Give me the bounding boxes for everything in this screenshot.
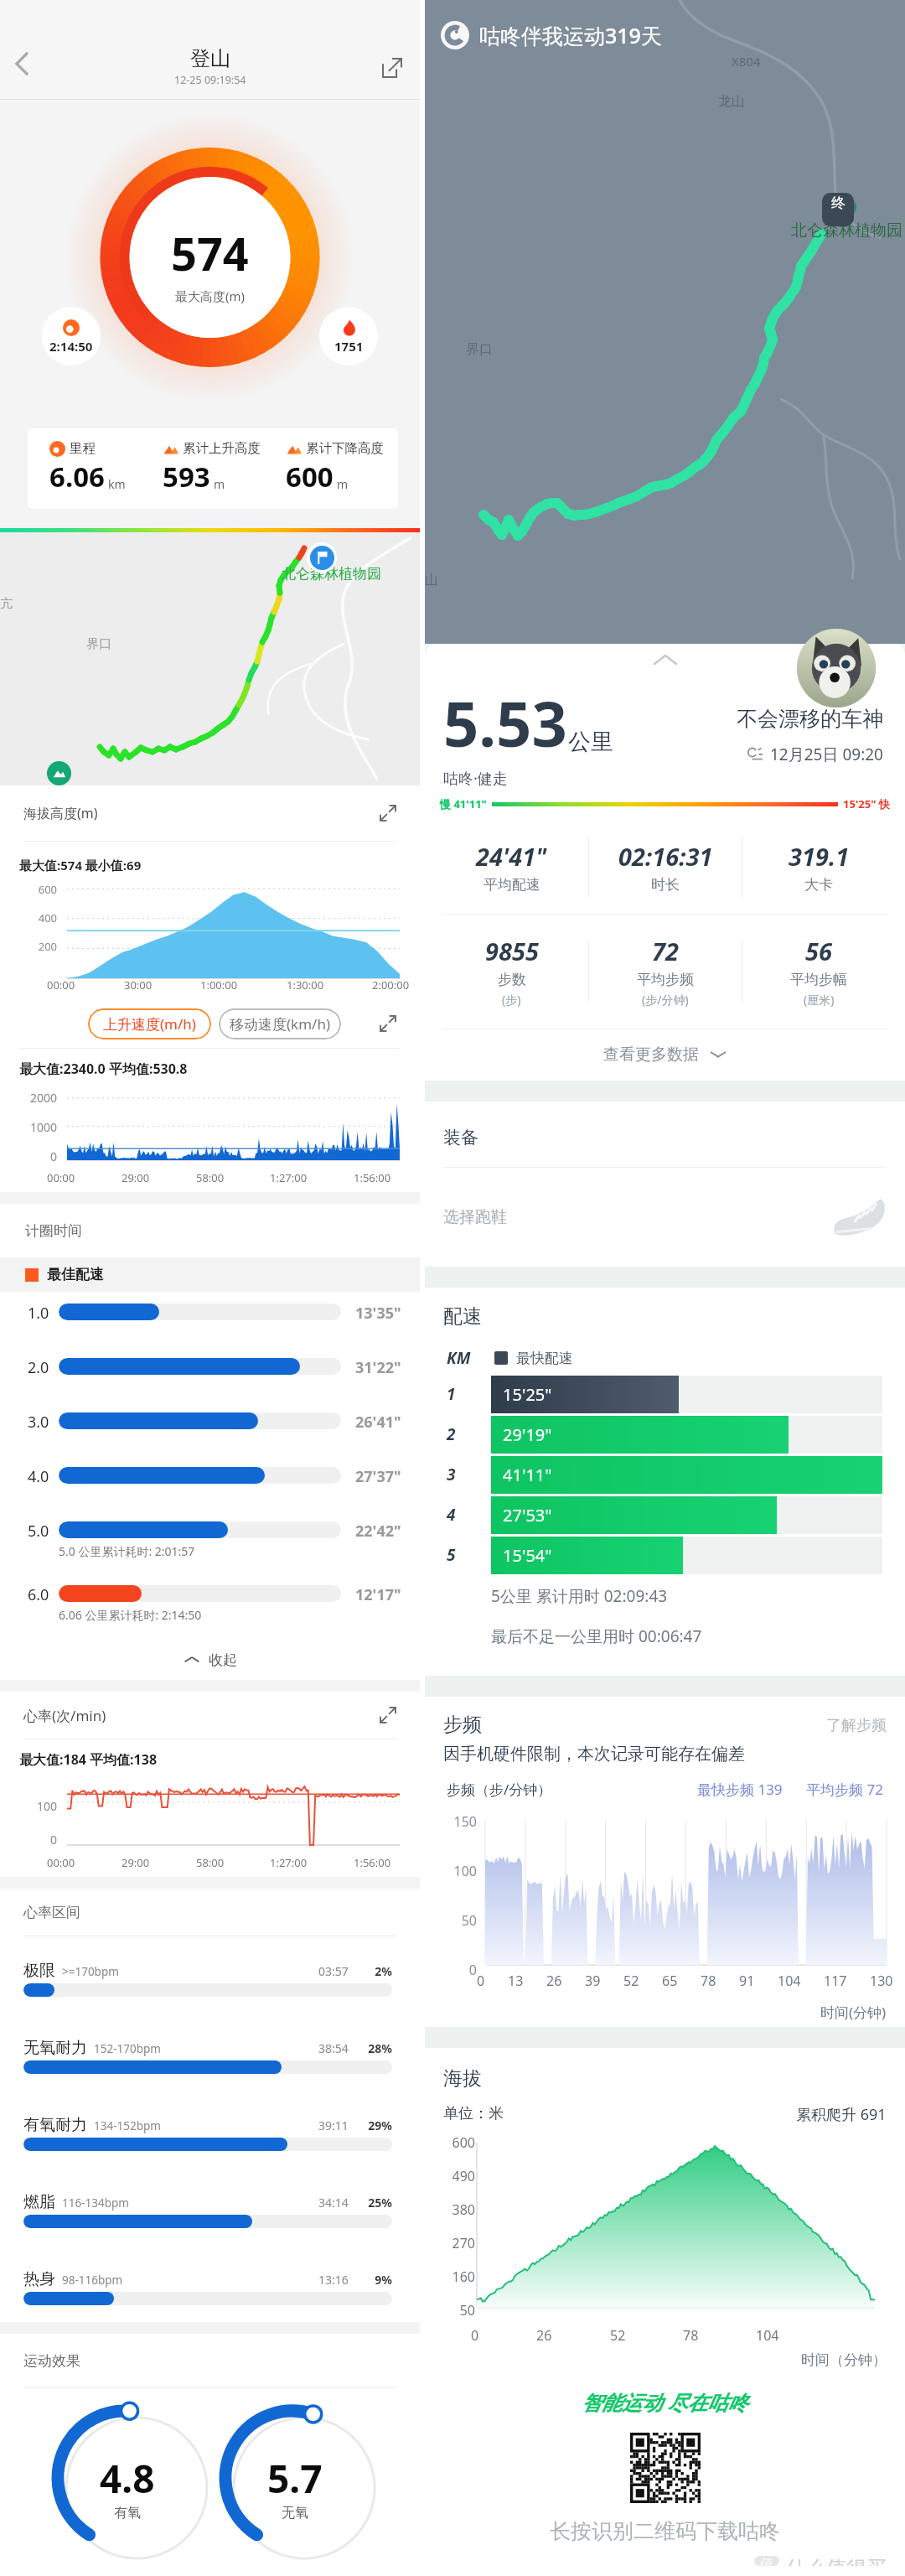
staticText: 5.0 (28, 1521, 59, 1538)
staticText: 9855 (485, 935, 539, 967)
staticText: 咕咚·健走 (443, 768, 508, 789)
staticText: 0 (23, 1148, 57, 1164)
staticText: 29:00 (122, 1170, 150, 1185)
staticText: 15'54" (503, 1544, 552, 1567)
staticText: 27'37" (355, 1466, 401, 1484)
staticText: 无氧耐力 (23, 2038, 87, 2058)
staticText: 5.7 (267, 2452, 323, 2505)
staticText: 1:56:00 (354, 1170, 391, 1185)
staticText: 25% (364, 2195, 392, 2211)
staticText: 0 (23, 1832, 57, 1848)
button[interactable]: Expand speed chart (376, 1012, 400, 1035)
button[interactable]: 了解步频 (826, 1716, 887, 1735)
staticText: 27'53" (503, 1504, 552, 1526)
staticText: 山 (425, 572, 438, 588)
button[interactable]: Share (380, 55, 405, 80)
staticText: 12-25 09:19:54 (174, 73, 246, 87)
staticText: 600 (30, 882, 57, 897)
button[interactable]: Expand chart (376, 801, 400, 825)
staticText: 龙山 (718, 93, 745, 110)
staticText: 1751 (334, 338, 364, 355)
staticText: 运动效果 (23, 2352, 80, 2370)
staticText: 91 (739, 1972, 755, 1990)
staticText: 登山 (190, 46, 230, 71)
staticText: m (214, 476, 225, 492)
staticText: 6.06 (49, 458, 105, 495)
staticText: 2000 (23, 1090, 57, 1106)
staticText: X804 (732, 53, 761, 70)
staticText: 咕咚伴我运动319天 (479, 21, 662, 49)
staticText: 12'17" (355, 1584, 401, 1602)
staticText: 极限 (23, 1961, 55, 1981)
button[interactable]: 收起 (0, 1640, 420, 1680)
staticText: 累积爬升 691 (796, 2104, 887, 2125)
staticText: 查看更多数据 (603, 1044, 699, 1065)
staticText: 5 (447, 1544, 456, 1566)
staticText: 200 (30, 939, 57, 954)
staticText: 00:00 (47, 1170, 75, 1185)
staticText: 100 (443, 1862, 477, 1880)
staticText: 最后不足一公里用时 00:06:47 (491, 1625, 702, 1647)
staticText: 最快步频 139 (697, 1780, 783, 1799)
staticText: 15'25" (503, 1383, 552, 1406)
staticText: 72 (652, 935, 679, 967)
button[interactable]: Expand heart rate chart (376, 1703, 400, 1727)
staticText: 78 (701, 1972, 716, 1990)
staticText: 长按识别二维码下载咕咚 (550, 2518, 780, 2544)
staticText: 593 (163, 458, 210, 495)
staticText: 00:00 (47, 1855, 75, 1870)
staticText: 移动速度(km/h) (230, 1014, 331, 1034)
staticText: 智能运动 尽在咕咚 (582, 2388, 748, 2416)
staticText: 150 (443, 1812, 477, 1831)
staticText: 50 (440, 2301, 475, 2319)
staticText: 时间（分钟） (801, 2351, 887, 2369)
staticText: 累计下降高度 (306, 440, 384, 457)
staticText: 29% (364, 2117, 392, 2133)
staticText: 58:00 (196, 1170, 225, 1185)
staticText: 02:16:31 (618, 840, 713, 873)
staticText: 400 (30, 910, 57, 925)
staticText: 5公里 累计用时 02:09:43 (491, 1585, 668, 1607)
staticText: 39:11 (318, 2117, 349, 2133)
staticText: 490 (440, 2167, 475, 2185)
staticText: 1:27:00 (270, 1855, 308, 1870)
staticText: 了解步频 (826, 1716, 887, 1735)
staticText: 1:27:00 (270, 1170, 308, 1185)
staticText: 9% (364, 2272, 392, 2288)
staticText: 13'35" (355, 1303, 401, 1320)
staticText: 100 (23, 1798, 57, 1814)
staticText: 160 (440, 2268, 475, 2286)
button[interactable]: 上升速度(m/h) (88, 1008, 211, 1039)
button[interactable]: 选择跑鞋 (443, 1168, 887, 1267)
button[interactable]: 移动速度(km/h) (219, 1008, 341, 1039)
staticText: 步频 (443, 1713, 482, 1737)
staticText: m (337, 476, 349, 492)
staticText: 步频（步/分钟） (447, 1780, 552, 1799)
staticText: 北仑森林植物园 (282, 565, 381, 583)
staticText: 52 (610, 2326, 626, 2345)
staticText: 270 (440, 2234, 475, 2252)
staticText: 平均步频 72 (806, 1780, 883, 1799)
staticText: (厘米) (804, 992, 835, 1008)
staticText: 0 (471, 2326, 479, 2345)
staticText: 不会漂移的车神 (737, 706, 883, 732)
staticText: 34:14 (318, 2195, 349, 2211)
staticText: 31'22" (355, 1357, 401, 1375)
staticText: 152-170bpm (94, 2041, 161, 2056)
staticText: 最大值:2340.0 平均值:530.8 (19, 1060, 188, 1078)
staticText: 65 (662, 1972, 678, 1990)
staticText: 因手机硬件限制，本次记录可能存在偏差 (443, 1744, 745, 1765)
staticText: 最大高度(m) (175, 288, 246, 304)
staticText: 38:54 (318, 2040, 349, 2056)
staticText: 时长 (651, 876, 680, 894)
staticText: 终 (831, 194, 846, 212)
staticText: 公里 (568, 728, 613, 756)
button[interactable]: Back (5, 46, 40, 81)
button[interactable]: 查看更多数据 (425, 1029, 905, 1081)
staticText: 选择跑鞋 (443, 1207, 507, 1227)
staticText: 98-116bpm (62, 2273, 123, 2288)
staticText: 2:00:00 (372, 977, 410, 993)
staticText: 4 (447, 1504, 456, 1526)
staticText: 00:00 (47, 977, 75, 993)
staticText: 116-134bpm (62, 2195, 129, 2211)
